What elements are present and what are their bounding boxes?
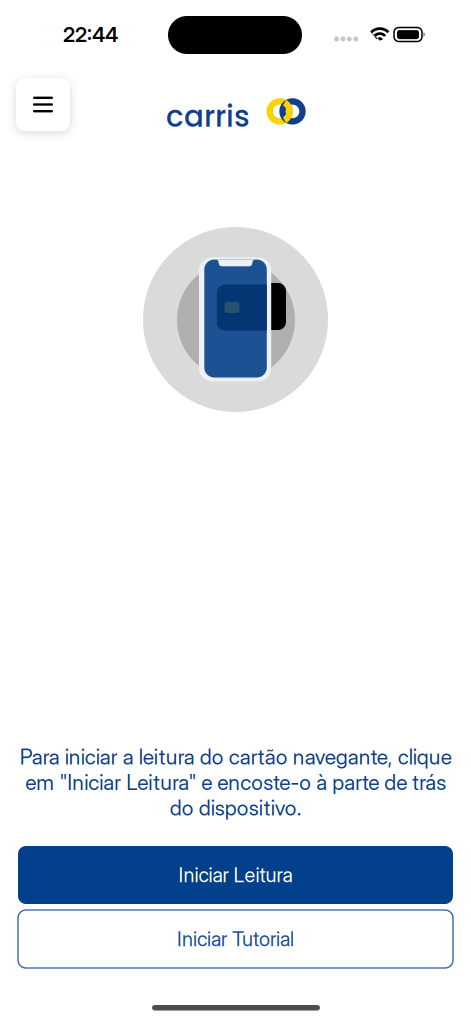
staticText: Iniciar Leitura: [178, 863, 292, 887]
staticText: 22:44: [63, 22, 118, 47]
button[interactable]: Iniciar Leitura: [18, 846, 453, 904]
button[interactable]: Menu: [16, 78, 70, 131]
button[interactable]: Iniciar Tutorial: [18, 910, 453, 968]
staticText: carris: [166, 96, 250, 137]
staticText: Iniciar Tutorial: [177, 927, 294, 951]
staticText: Para iniciar a leitura do cartão navegan…: [19, 744, 451, 820]
